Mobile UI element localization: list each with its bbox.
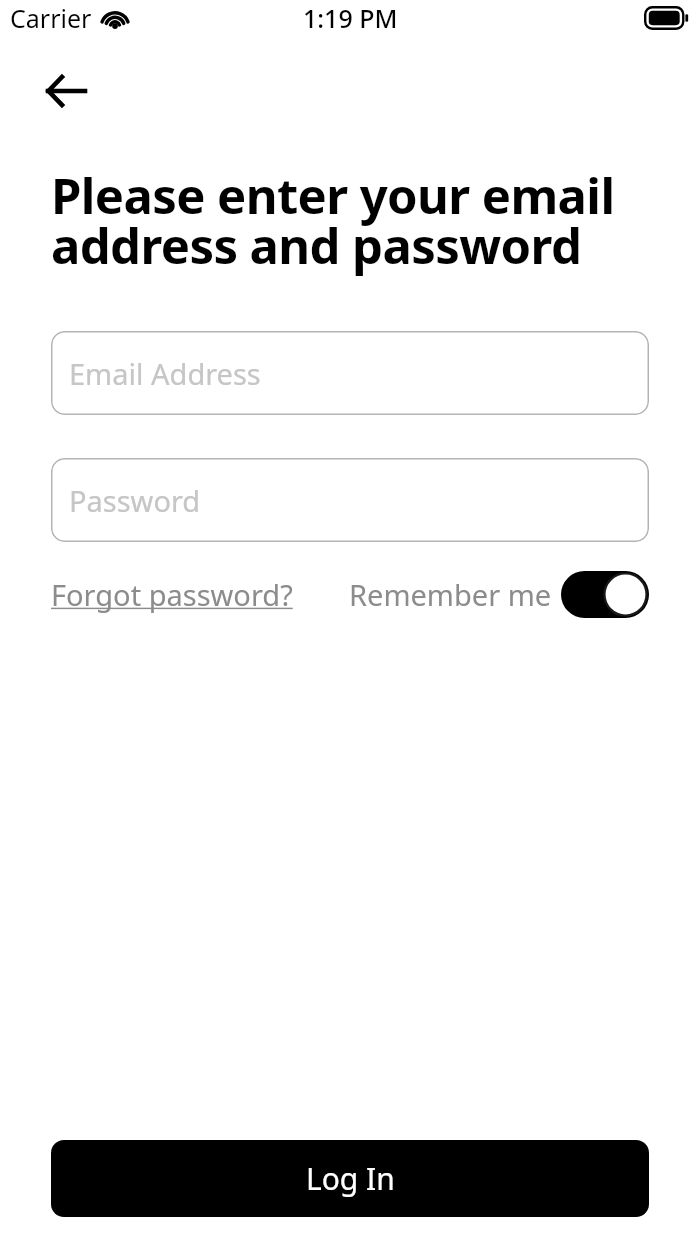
staticText: Log In [306,1158,395,1199]
staticText: Password [69,481,201,520]
staticText: Carrier [10,1,92,35]
button[interactable]: Password [51,458,649,542]
button[interactable]: Log In [51,1140,649,1217]
staticText: Please enter your email address and pass… [51,162,649,279]
button[interactable]: Forgot password? [51,575,293,614]
staticText: Remember me [349,575,552,614]
button[interactable]: Back [34,67,98,115]
staticText: Forgot password? [51,575,293,614]
staticText: Email Address [69,354,261,393]
staticText: 1:19 PM [303,1,398,35]
button[interactable]: Remember me [349,571,649,618]
button[interactable]: Email Address [51,331,649,415]
